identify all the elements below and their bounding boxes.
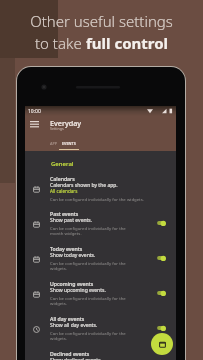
staticText: General: [51, 160, 74, 168]
staticText: Can be configured individually for the w…: [50, 295, 126, 306]
staticText: to take: [35, 33, 86, 53]
staticText: All day events: [50, 315, 85, 322]
staticText: Declined events: [50, 350, 90, 357]
staticText: Show past events.: [50, 217, 93, 224]
button[interactable]: Upcoming events: [25, 280, 176, 314]
staticText: full control: [86, 33, 169, 53]
staticText: Show all day events.: [50, 322, 98, 329]
button[interactable]: Past events: [25, 210, 176, 244]
staticText: Other useful settings: [30, 11, 173, 31]
staticText: Can be configured individually for the m…: [50, 225, 126, 236]
staticText: Can be configured individually for the w…: [50, 196, 144, 202]
staticText: Can be configured individually for the w…: [50, 330, 126, 341]
staticText: Show upcoming events.: [50, 287, 106, 294]
button[interactable]: [155, 287, 169, 299]
staticText: Past events: [50, 210, 79, 217]
button[interactable]: Calendars: [25, 175, 176, 209]
button[interactable]: Today events: [25, 245, 176, 279]
button[interactable]: EVENTS: [59, 141, 79, 149]
button[interactable]: [155, 217, 169, 229]
staticText: APP: [50, 141, 58, 146]
staticText: Settings: [50, 126, 64, 131]
staticText: 10:00: [28, 108, 41, 115]
button[interactable]: APP: [48, 141, 60, 149]
button[interactable]: [155, 252, 169, 264]
staticText: Show today events.: [50, 252, 96, 259]
staticText: Show declined events.: [50, 357, 102, 360]
button[interactable]: Add event: [151, 333, 173, 355]
button[interactable]: Declined events: [25, 350, 176, 360]
staticText: EVENTS: [62, 141, 76, 146]
staticText: Can be configured individually for the w…: [50, 260, 126, 271]
button[interactable]: [155, 322, 169, 334]
button[interactable]: All day events: [25, 315, 176, 349]
staticText: Everyday: [50, 118, 82, 128]
staticText: Upcoming events: [50, 280, 94, 287]
staticText: Today events: [50, 245, 83, 252]
button[interactable]: Menu: [25, 116, 44, 135]
staticText: All calendars: [50, 188, 78, 194]
staticText: Calendars shown by the app.: [50, 182, 118, 189]
staticText: Calendars: [50, 175, 75, 182]
